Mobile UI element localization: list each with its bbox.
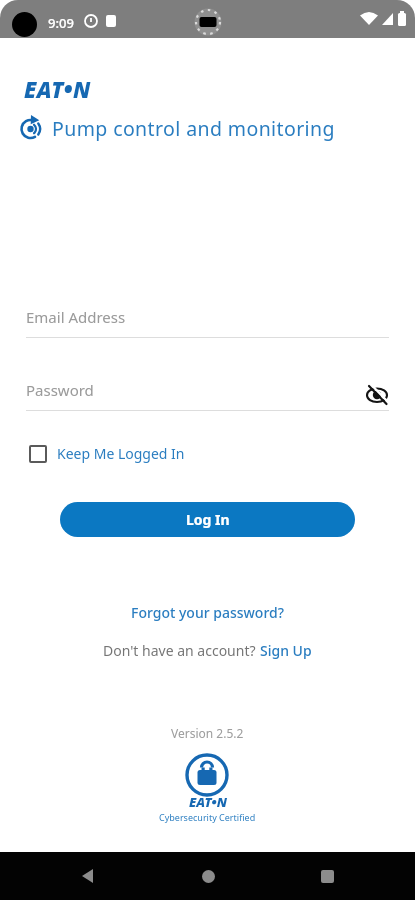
staticText: Version 2.5.2	[171, 725, 244, 741]
button[interactable]	[184, 852, 232, 900]
staticText: Don't have an account?	[103, 641, 260, 660]
button[interactable]: Keep Me Logged In	[29, 444, 185, 463]
button[interactable]: Forgot your password?	[131, 603, 284, 622]
staticText: Keep Me Logged In	[57, 444, 185, 463]
staticText: EAT•N	[24, 74, 91, 104]
button[interactable]: Sign Up	[260, 641, 312, 660]
staticText: EAT•N	[189, 793, 227, 811]
staticText: 9:09	[48, 14, 74, 32]
button[interactable]	[64, 852, 112, 900]
staticText: Pump control and monitoring	[52, 115, 335, 142]
staticText: Log In	[186, 510, 230, 529]
staticText: Password	[26, 380, 94, 400]
staticText: Cybersecurity Certified	[159, 811, 256, 823]
button[interactable]	[303, 852, 351, 900]
staticText: Email Address	[26, 307, 126, 327]
button[interactable]: Log In	[60, 502, 355, 537]
button[interactable]	[361, 379, 393, 411]
